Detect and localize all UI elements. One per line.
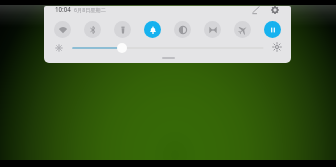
button[interactable]: Brightness: [73, 42, 263, 54]
button[interactable]: Edit: [250, 6, 262, 16]
staticText: 6月8日星期二: [74, 6, 106, 13]
button[interactable]: Flashlight: [114, 21, 131, 38]
button[interactable]: Wi-Fi: [54, 21, 71, 38]
staticText: 10:04: [55, 6, 71, 13]
button[interactable]: Bluetooth: [84, 21, 101, 38]
button[interactable]: Mobile data: [264, 21, 281, 38]
button[interactable]: Dark mode: [174, 21, 191, 38]
button[interactable]: Settings: [269, 6, 281, 16]
button[interactable]: Airplane mode: [234, 21, 251, 38]
button[interactable]: Do not disturb: [144, 21, 161, 38]
button[interactable]: Auto rotate: [204, 21, 221, 38]
